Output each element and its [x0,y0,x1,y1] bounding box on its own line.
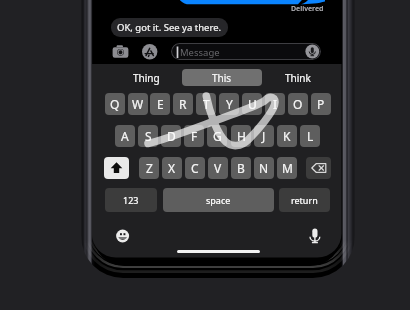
button[interactable]: X [162,157,182,179]
button[interactable]: Emoji [115,228,131,244]
staticText: Message [180,46,220,59]
staticText: OK, got it. See ya there. [117,21,222,34]
staticText: This [212,71,232,85]
button[interactable]: D [161,125,181,147]
button[interactable]: 123 [105,188,157,212]
button[interactable]: C [185,157,205,179]
button[interactable]: Shift [104,157,129,179]
staticText: space [206,194,231,206]
button[interactable]: H [231,125,251,147]
staticText: C [191,160,199,176]
button[interactable]: G [207,125,227,147]
button[interactable]: This [182,69,262,86]
staticText: R [179,96,187,112]
staticText: B [237,160,245,176]
button[interactable]: W [128,93,148,115]
button[interactable]: Think [268,69,328,86]
button[interactable]: Apps [142,44,157,59]
button[interactable]: K [277,125,297,147]
staticText: A [121,128,129,144]
staticText: U [248,96,257,112]
button[interactable]: Q [105,93,125,115]
staticText: G [213,128,222,144]
staticText: I [273,96,278,112]
button[interactable]: N [254,157,274,179]
button[interactable]: O [288,93,308,115]
button[interactable]: Thing [116,69,176,86]
staticText: V [214,160,222,176]
button[interactable]: B [231,157,251,179]
staticText: J [262,128,266,144]
staticText: Think [285,71,311,85]
staticText: Z [146,160,153,176]
button[interactable]: Z [139,157,159,179]
button[interactable]: T [196,93,216,115]
button[interactable]: Y [219,93,239,115]
staticText: Thing [133,71,160,85]
button[interactable]: J [254,125,274,147]
button[interactable]: A [115,125,135,147]
staticText: D [167,128,176,144]
staticText: T [203,96,210,112]
staticText: K [283,128,291,144]
button[interactable]: R [173,93,193,115]
button[interactable]: F [184,125,204,147]
button[interactable]: Take photo [111,44,130,59]
staticText: O [293,96,303,112]
staticText: return [291,194,318,206]
staticText: M [282,160,293,176]
staticText: X [168,160,176,176]
button[interactable]: Delete [306,157,331,179]
staticText: N [259,160,269,176]
staticText: S [145,128,152,144]
staticText: 123 [123,194,139,206]
staticText: H [237,128,246,144]
button[interactable]: I [265,93,285,115]
staticText: F [191,128,198,144]
button[interactable]: L [300,125,320,147]
staticText: Y [226,96,233,112]
staticText: Q [110,96,120,112]
button[interactable]: Dictate [308,227,322,245]
button[interactable]: U [242,93,262,115]
staticText: L [307,128,314,144]
button[interactable] [171,43,321,60]
button[interactable]: E [150,93,170,115]
staticText: Delivered [291,4,324,14]
button[interactable]: return [279,188,330,212]
button[interactable]: space [163,188,274,212]
staticText: P [317,96,325,112]
staticText: E [157,96,164,112]
button[interactable]: OK, got it. See ya there. [111,18,228,37]
staticText: W [132,96,144,112]
button[interactable]: M [277,157,297,179]
button[interactable]: P [311,93,331,115]
button[interactable]: S [138,125,158,147]
button[interactable]: V [208,157,228,179]
